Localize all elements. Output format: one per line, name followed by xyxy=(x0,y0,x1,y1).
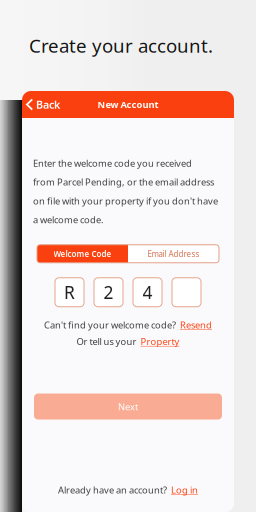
button[interactable]: Resend xyxy=(180,319,212,331)
button[interactable]: Back xyxy=(22,91,66,118)
staticText: New Account xyxy=(97,98,158,111)
button[interactable]: Welcome Code xyxy=(37,245,128,263)
button[interactable]: Property xyxy=(140,335,179,348)
staticText: Back xyxy=(36,97,60,112)
staticText: Log in xyxy=(171,484,198,496)
staticText: Can't find your welcome code? xyxy=(44,319,176,331)
staticText: Next xyxy=(118,400,138,413)
staticText: Resend xyxy=(180,319,212,331)
staticText: Email Address xyxy=(147,248,199,259)
staticText: Enter the welcome code you received from… xyxy=(33,157,218,226)
button[interactable]: Log in xyxy=(171,484,198,496)
staticText: 4 xyxy=(142,281,152,304)
staticText: 2 xyxy=(103,281,113,304)
staticText: Already have an account? xyxy=(58,484,167,496)
staticText: Welcome Code xyxy=(53,248,111,259)
button[interactable]: Email Address xyxy=(128,245,219,263)
staticText: Create your account. xyxy=(29,33,213,58)
staticText: R xyxy=(64,281,75,304)
staticText: Property xyxy=(140,335,179,348)
staticText: Or tell us your xyxy=(76,335,136,348)
button[interactable]: Next xyxy=(34,394,222,420)
